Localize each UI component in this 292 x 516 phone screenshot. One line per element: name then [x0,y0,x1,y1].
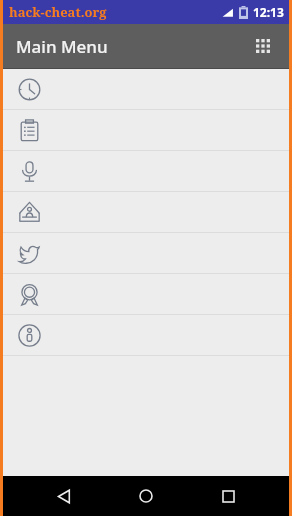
button[interactable]: Awards [3,274,289,315]
button[interactable]: Home [125,476,167,516]
button[interactable]: Twitter [3,233,289,274]
button[interactable]: Back [43,476,85,516]
button[interactable]: Agenda [3,110,289,151]
staticText: 12:13 [253,4,284,20]
button[interactable]: Microphone [3,151,289,192]
staticText: Main Menu [16,35,108,58]
button[interactable]: Apps grid [247,30,279,62]
button[interactable]: Speakers [3,192,289,233]
button[interactable]: Information [3,315,289,356]
staticText: hack-cheat.org [9,3,107,21]
button[interactable]: Clock [3,69,289,110]
button[interactable]: Recent apps [207,476,249,516]
